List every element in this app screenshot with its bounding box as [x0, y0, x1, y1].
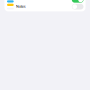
button[interactable]: Toggle Notes: [72, 4, 83, 9]
staticText: Notes: [16, 4, 26, 9]
button[interactable]: Toggle: [72, 0, 83, 3]
